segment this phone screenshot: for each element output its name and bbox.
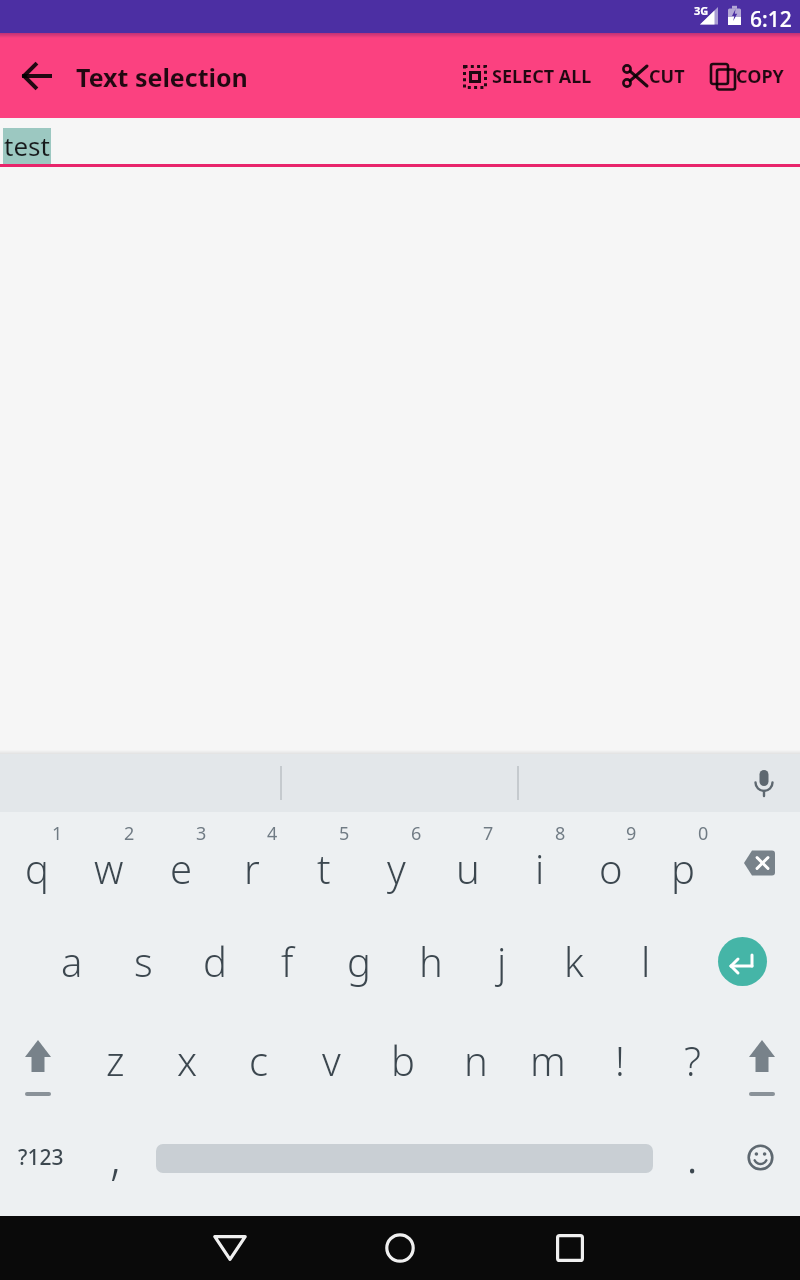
button[interactable] [370,1218,430,1278]
button[interactable]: SELECT ALL [455,49,607,103]
staticText: 9 [626,821,637,846]
staticText: n [464,1033,488,1087]
staticText: 6:12 [750,5,792,34]
staticText: h [419,934,443,988]
button[interactable] [745,765,783,803]
staticText: p [671,841,695,895]
button[interactable] [724,830,796,896]
button[interactable]: x [152,1024,222,1096]
button[interactable] [10,49,64,103]
button[interactable]: test [4,123,124,167]
button[interactable]: 5 [324,818,364,848]
staticText: . [686,1120,699,1188]
button[interactable]: q [2,832,72,904]
button[interactable] [2,1026,74,1106]
staticText: COPY [736,64,784,89]
button[interactable]: w [74,832,144,904]
staticText: y [387,841,406,895]
staticText: o [599,841,623,895]
button[interactable]: COPY [702,49,797,103]
button[interactable]: ? [657,1024,727,1096]
staticText: e [170,841,193,895]
button[interactable]: c [224,1024,294,1096]
button[interactable]: 7 [468,818,508,848]
button[interactable]: s [108,925,178,997]
button[interactable]: v [296,1024,366,1096]
button[interactable]: CUT [614,49,694,103]
staticText: 6 [411,821,422,846]
staticText: 0 [698,821,709,846]
button[interactable]: b [368,1024,438,1096]
button[interactable]: e [146,832,216,904]
button[interactable] [706,925,778,997]
staticText: t [317,841,331,895]
button[interactable]: 9 [611,818,651,848]
staticText: z [106,1033,125,1087]
button[interactable]: 8 [540,818,580,848]
button[interactable]: 6 [396,818,436,848]
button[interactable]: g [324,925,394,997]
staticText: j [497,934,507,988]
button[interactable]: a [37,925,107,997]
staticText: s [134,934,153,988]
staticText: CUT [649,64,685,89]
button[interactable]: i [505,832,575,904]
button[interactable]: p [648,832,718,904]
staticText: , [110,1124,121,1189]
staticText: d [203,934,227,988]
button[interactable]: l [611,925,681,997]
button[interactable]: h [396,925,466,997]
staticText: SELECT ALL [492,64,592,89]
button[interactable]: z [80,1024,150,1096]
button[interactable]: 1 [37,818,77,848]
button[interactable]: o [576,832,646,904]
staticText: k [564,934,584,988]
button[interactable]: d [180,925,250,997]
staticText: test [4,128,50,163]
button[interactable]: m [513,1024,583,1096]
button[interactable]: ! [585,1024,655,1096]
staticText: Text selection [76,60,248,94]
staticText: 3G [694,3,709,18]
button[interactable]: . [662,1116,722,1192]
staticText: q [25,841,49,895]
staticText: b [391,1033,415,1087]
button[interactable]: u [433,832,503,904]
staticText: f [281,934,294,988]
button[interactable]: f [252,925,322,997]
staticText: ?123 [18,1143,64,1172]
button[interactable] [724,1121,796,1193]
staticText: 4 [267,821,278,846]
staticText: l [641,934,651,988]
button[interactable]: y [361,832,431,904]
button[interactable]: , [85,1118,145,1194]
button[interactable]: n [441,1024,511,1096]
staticText: a [61,934,83,988]
staticText: 3 [196,821,207,846]
staticText: i [535,841,545,895]
staticText: m [530,1033,566,1087]
button[interactable] [156,1127,653,1189]
staticText: 5 [339,821,350,846]
staticText: 1 [52,821,63,846]
staticText: ? [684,1033,701,1087]
staticText: g [347,934,371,988]
staticText: r [244,841,260,895]
staticText: u [456,841,480,895]
button[interactable] [540,1218,600,1278]
button[interactable]: t [289,832,359,904]
button[interactable]: 0 [683,818,723,848]
button[interactable]: k [539,925,609,997]
staticText: 8 [555,821,566,846]
button[interactable]: j [467,925,537,997]
button[interactable]: 3 [181,818,221,848]
button[interactable]: 4 [252,818,292,848]
button[interactable]: r [217,832,287,904]
button[interactable]: 2 [109,818,149,848]
staticText: x [177,1033,198,1087]
staticText: 7 [483,821,494,846]
button[interactable]: ?123 [3,1121,79,1193]
button[interactable] [726,1026,798,1106]
button[interactable] [200,1218,260,1278]
staticText: ! [615,1033,625,1087]
